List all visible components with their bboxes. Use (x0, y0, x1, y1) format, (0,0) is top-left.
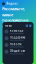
staticText: Яндекс (6, 2, 17, 5)
staticText: вы используете (2, 23, 32, 29)
staticText: какие приложения (2, 12, 28, 23)
staticText: Чаты (4, 24, 11, 27)
staticText: Новости (10, 42, 22, 46)
staticText: Поддержка (10, 36, 26, 39)
staticText: Общий чат (10, 49, 25, 53)
staticText: Расскажите, (2, 6, 25, 11)
staticText: Команда (10, 29, 24, 32)
